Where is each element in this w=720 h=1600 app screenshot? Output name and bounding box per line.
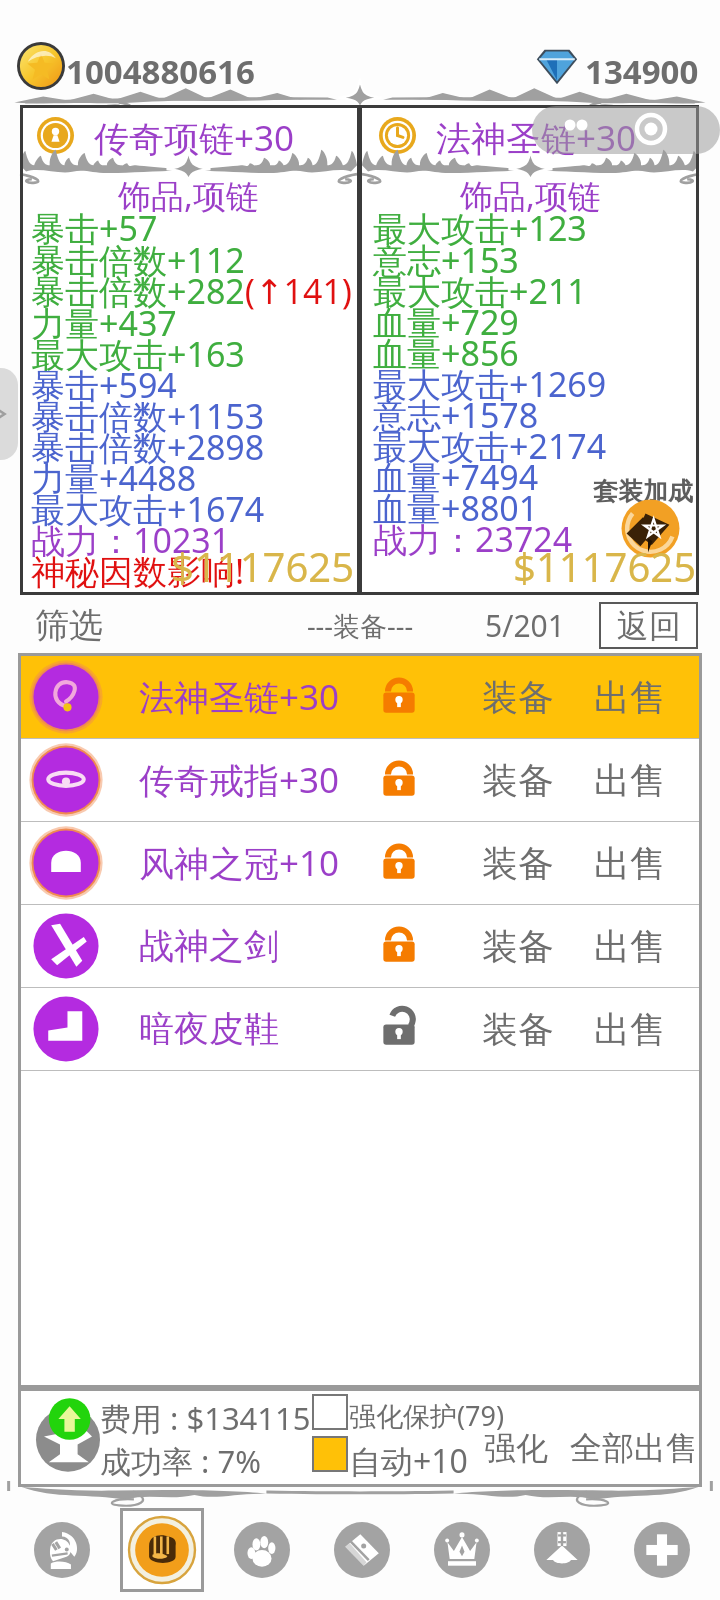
button[interactable] [312, 1436, 348, 1472]
staticText: 暴击+57 暴击倍数+112 暴击倍数+282(↑141) 力量+437 最大攻… [31, 205, 353, 594]
staticText: 出售 [594, 924, 666, 969]
staticText: 出售 [594, 1007, 666, 1052]
staticText: 装备 [482, 924, 554, 969]
button[interactable]: 返回 [599, 602, 698, 649]
staticText: 传奇项链+30 [94, 114, 295, 162]
staticText: 筛选 [35, 604, 103, 647]
button[interactable]: 全部出售 [568, 1426, 700, 1470]
staticText: 自动+10 [349, 1439, 468, 1483]
button[interactable]: 强化 [482, 1426, 550, 1470]
staticText: 装备 [482, 675, 554, 720]
staticText: 法神圣链+30 [436, 114, 637, 162]
staticText: 成功率 : 7% [100, 1440, 356, 1482]
staticText: $1117625 [513, 539, 697, 593]
staticText: 1004880616 [66, 49, 255, 94]
button[interactable]: Ranking [434, 1522, 490, 1578]
staticText: 套装加成 [593, 476, 693, 507]
button[interactable]: 筛选 [31, 600, 107, 651]
button[interactable]: Shop [534, 1522, 590, 1578]
staticText: 134900 [585, 49, 699, 94]
staticText: 法神圣链+30 [139, 673, 340, 721]
button[interactable]: Skills [334, 1522, 390, 1578]
button[interactable]: Open drawer [0, 368, 18, 460]
staticText: 费用 : $1341150 [100, 1397, 356, 1439]
staticText: 传奇戒指+30 [139, 756, 340, 804]
staticText: 战神之剑 [139, 924, 279, 968]
staticText: 出售 [594, 758, 666, 803]
staticText: 暗夜皮鞋 [139, 1007, 279, 1051]
staticText: 返回 [617, 606, 681, 646]
button[interactable]: Screen recorder [532, 106, 720, 154]
staticText: 全部出售 [570, 1428, 698, 1468]
staticText: 最大攻击+123 意志+153 最大攻击+211 血量+729 血量+856 最… [373, 205, 607, 562]
button[interactable]: 暗夜皮鞋 [21, 988, 699, 1070]
button[interactable] [312, 1394, 348, 1430]
staticText: 强化 [484, 1428, 548, 1468]
staticText: 装备 [482, 758, 554, 803]
button[interactable]: Equipment [120, 1508, 204, 1592]
button[interactable]: Character [34, 1522, 90, 1578]
button[interactable]: 风神之冠+10 [21, 822, 699, 904]
staticText: 出售 [594, 675, 666, 720]
staticText: ---装备--- [280, 607, 440, 644]
button[interactable]: More [634, 1522, 690, 1578]
staticText: 装备 [482, 841, 554, 886]
staticText: $1117625 [171, 539, 355, 593]
button[interactable]: 传奇戒指+30 [21, 739, 699, 821]
staticText: 装备 [482, 1007, 554, 1052]
button[interactable]: 法神圣链+30 [21, 656, 699, 738]
button[interactable]: 战神之剑 [21, 905, 699, 987]
staticText: 强化保护(79) [349, 1397, 505, 1434]
staticText: 出售 [594, 841, 666, 886]
button[interactable]: Pets [234, 1522, 290, 1578]
staticText: 饰品,项链 [20, 173, 357, 218]
staticText: 饰品,项链 [362, 173, 699, 218]
staticText: 风神之冠+10 [139, 839, 340, 887]
staticText: 5/201 [470, 605, 580, 646]
